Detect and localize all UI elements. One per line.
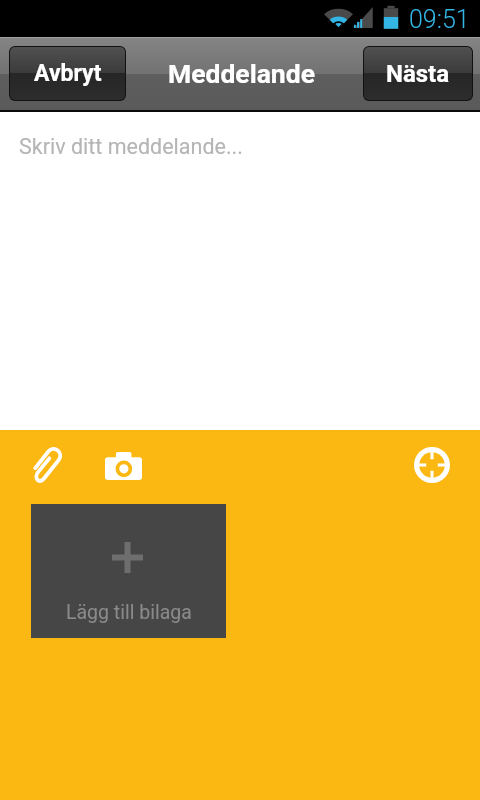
button[interactable]: Attach file bbox=[22, 440, 74, 492]
button[interactable]: Take photo bbox=[97, 440, 149, 492]
staticText: Meddelande bbox=[168, 58, 315, 89]
button[interactable]: Location bbox=[406, 439, 458, 491]
staticText: Avbryt bbox=[34, 60, 102, 87]
button[interactable]: Lägg till bilaga bbox=[31, 504, 226, 638]
button[interactable]: Nästa bbox=[364, 47, 472, 100]
staticText: Nästa bbox=[386, 60, 450, 88]
staticText: 09:51 bbox=[409, 5, 470, 34]
staticText: Lägg till bilaga bbox=[66, 601, 192, 624]
staticText: Skriv ditt meddelande... bbox=[19, 134, 243, 159]
button[interactable]: Avbryt bbox=[10, 47, 125, 100]
button[interactable]: Skriv ditt meddelande... bbox=[0, 112, 480, 430]
